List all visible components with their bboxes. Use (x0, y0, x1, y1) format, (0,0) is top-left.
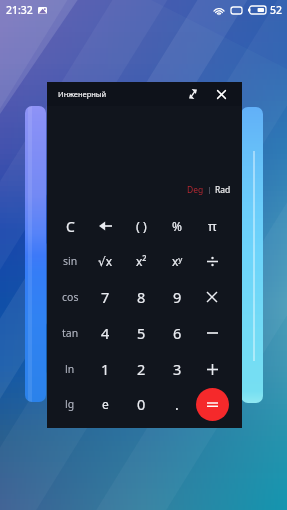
staticText: 0 (137, 394, 146, 414)
staticText: 1 (101, 359, 110, 379)
staticText: e (102, 396, 109, 412)
button[interactable]: 5 (123, 315, 159, 351)
button[interactable]: lg (52, 386, 88, 422)
button[interactable]: 1 (87, 351, 123, 387)
button[interactable]: Rad (215, 184, 231, 196)
staticText: √x (98, 253, 112, 269)
staticText: tan (62, 326, 79, 340)
button[interactable]: xʸ (159, 243, 195, 279)
button[interactable]: 2 (123, 351, 159, 387)
button[interactable]: 9 (159, 279, 195, 315)
button[interactable] (194, 315, 230, 351)
button[interactable]: 3 (159, 351, 195, 387)
button[interactable]: tan (52, 315, 88, 351)
staticText: x² (136, 253, 147, 269)
button[interactable]: x² (123, 243, 159, 279)
staticText: ( ) (136, 218, 147, 235)
button[interactable]: π (194, 208, 230, 244)
button[interactable] (196, 388, 229, 421)
staticText: 6 (173, 323, 182, 343)
staticText: π (208, 217, 217, 235)
button[interactable]: . (159, 386, 195, 422)
staticText: lg (65, 397, 75, 411)
staticText: 4 (101, 323, 110, 343)
staticText: 8 (137, 287, 146, 307)
button[interactable]: Backspace (87, 208, 123, 244)
staticText: 9 (173, 287, 182, 307)
button[interactable]: Close (213, 86, 229, 102)
button[interactable]: 8 (123, 279, 159, 315)
staticText: 7 (101, 287, 110, 307)
staticText: 52 (270, 3, 283, 17)
button[interactable]: 7 (87, 279, 123, 315)
staticText: 2 (137, 359, 146, 379)
button[interactable]: Deg (187, 184, 204, 196)
staticText: Deg (187, 184, 204, 196)
staticText: ln (65, 362, 75, 376)
button[interactable] (194, 386, 230, 422)
button[interactable]: sin (52, 243, 88, 279)
staticText: sin (63, 254, 78, 268)
button[interactable] (194, 279, 230, 315)
button[interactable]: ( ) (123, 208, 159, 244)
staticText: C (66, 217, 75, 236)
staticText: % (172, 218, 182, 234)
staticText: Инженерный (58, 89, 107, 99)
button[interactable] (194, 351, 230, 387)
staticText: 21:32 (6, 3, 33, 17)
button[interactable]: 0 (123, 386, 159, 422)
staticText: 5 (137, 323, 146, 343)
button[interactable]: e (87, 386, 123, 422)
button[interactable]: % (159, 208, 195, 244)
staticText: 3 (173, 359, 182, 379)
button[interactable]: cos (52, 279, 88, 315)
button[interactable]: 6 (159, 315, 195, 351)
staticText: . (175, 395, 179, 414)
staticText: Rad (215, 184, 231, 196)
button[interactable]: 4 (87, 315, 123, 351)
button[interactable]: Collapse window (185, 86, 201, 102)
button[interactable] (194, 243, 230, 279)
staticText: xʸ (172, 253, 183, 269)
button[interactable]: √x (87, 243, 123, 279)
button[interactable]: C (52, 208, 88, 244)
staticText: cos (62, 290, 79, 304)
button[interactable]: ln (52, 351, 88, 387)
